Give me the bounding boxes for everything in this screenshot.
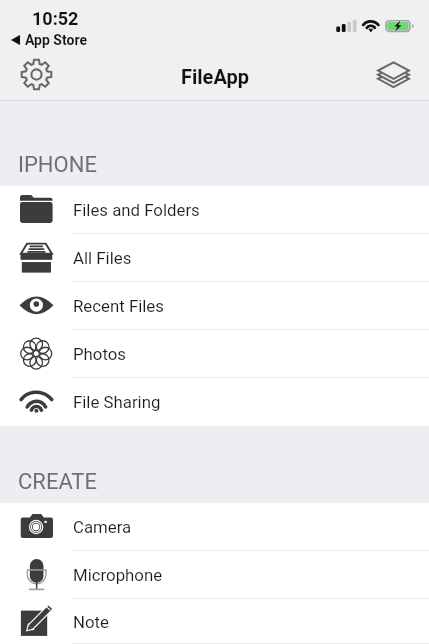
button[interactable]: All Files (0, 234, 429, 282)
staticText: Recent Files (73, 296, 164, 316)
button[interactable]: File Sharing (0, 378, 429, 426)
staticText: FileApp (181, 65, 249, 88)
button[interactable]: Photos (0, 330, 429, 378)
button[interactable]: Layers (377, 58, 410, 91)
staticText: Microphone (73, 565, 163, 585)
button[interactable]: Microphone (0, 551, 429, 599)
staticText: Photos (73, 344, 127, 364)
staticText: All Files (73, 248, 132, 268)
button[interactable]: Recent Files (0, 282, 429, 330)
button[interactable]: Note (0, 599, 429, 644)
staticText: Note (73, 612, 109, 632)
staticText: Camera (73, 517, 132, 537)
staticText: Files and Folders (73, 200, 200, 220)
staticText: IPHONE (18, 152, 97, 178)
staticText: App Store (25, 32, 87, 48)
staticText: File Sharing (73, 392, 161, 412)
button[interactable]: Camera (0, 503, 429, 551)
staticText: CREATE (18, 469, 97, 495)
button[interactable]: Files and Folders (0, 186, 429, 234)
button[interactable]: Settings (20, 58, 53, 91)
staticText: 10:52 (32, 8, 79, 29)
